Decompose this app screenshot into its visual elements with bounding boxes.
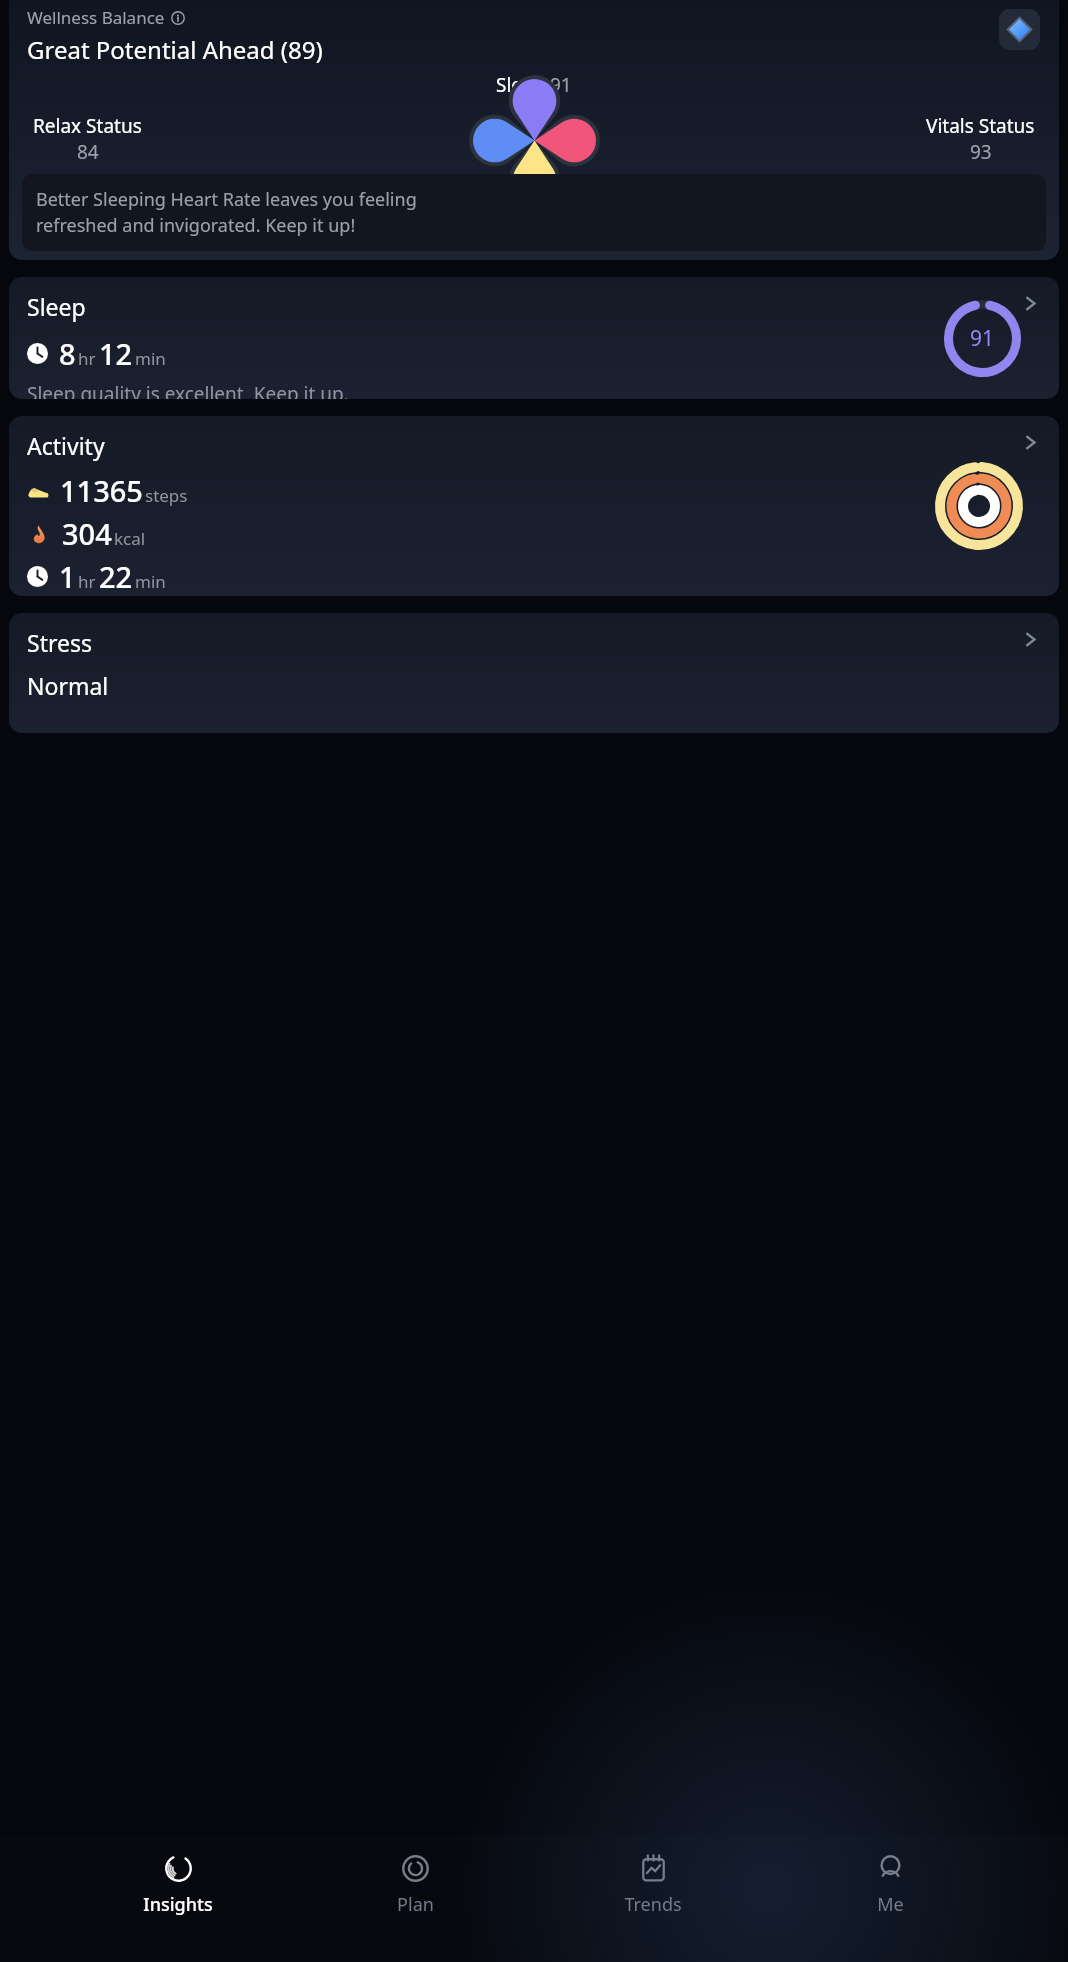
staticText: Plan (397, 1892, 434, 1917)
staticText: Trends (624, 1892, 682, 1917)
staticText: 91 (970, 324, 995, 353)
staticText: 304 (62, 514, 112, 553)
staticText: hr (78, 347, 96, 370)
staticText: Sleep (27, 291, 86, 322)
other: Plan (399, 1852, 432, 1885)
staticText: steps (145, 484, 188, 507)
button[interactable]: Wellness Balance (9, 0, 1059, 260)
staticText: Insights (143, 1892, 213, 1917)
staticText: 12 (99, 334, 133, 373)
button[interactable]: Stress (9, 613, 1059, 733)
staticText: hr (78, 570, 96, 593)
other: Insights (162, 1852, 195, 1885)
staticText: Normal (27, 670, 109, 701)
staticText: min (135, 347, 166, 370)
staticText: Better Sleeping Heart Rate leaves you fe… (36, 187, 417, 237)
staticText: Relax Status (33, 113, 142, 139)
button[interactable]: Wellness badge (999, 9, 1040, 50)
staticText: Sleep (496, 72, 550, 98)
staticText: 8 (59, 334, 76, 373)
staticText: Sleep quality is excellent, Keep it up. (27, 381, 349, 399)
other: Information (171, 11, 185, 25)
other: Trends (637, 1852, 670, 1885)
staticText: 84 (77, 139, 99, 165)
staticText: 11365 (60, 471, 143, 510)
staticText: Activity (488, 171, 558, 197)
staticText: Me (877, 1892, 904, 1917)
staticText: min (135, 570, 166, 593)
button[interactable]: Open details (1022, 434, 1039, 451)
button[interactable]: Activity (9, 416, 1059, 596)
staticText: kcal (114, 527, 146, 550)
staticText: Vitals Status (926, 113, 1035, 139)
staticText: 1 (59, 557, 76, 596)
staticText: 93 (970, 139, 992, 165)
staticText: 91 (550, 72, 572, 98)
button[interactable]: Plan (355, 1848, 475, 1921)
button[interactable]: Trends (593, 1848, 713, 1921)
button[interactable]: Better Sleeping Heart Rate leaves you fe… (22, 174, 1046, 251)
staticText: Wellness Balance (27, 6, 165, 29)
staticText: 22 (99, 557, 133, 596)
button[interactable]: Insights (118, 1848, 238, 1921)
button[interactable]: Open details (1022, 295, 1039, 312)
staticText: Great Potential Ahead (89) (27, 33, 323, 66)
button[interactable]: Open details (1022, 631, 1039, 648)
button[interactable]: Me (830, 1848, 950, 1921)
staticText: 88 (558, 171, 580, 197)
staticText: Stress (27, 627, 92, 658)
other: Me (874, 1852, 907, 1885)
staticText: Activity (27, 430, 105, 461)
button[interactable]: Sleep (9, 277, 1059, 399)
